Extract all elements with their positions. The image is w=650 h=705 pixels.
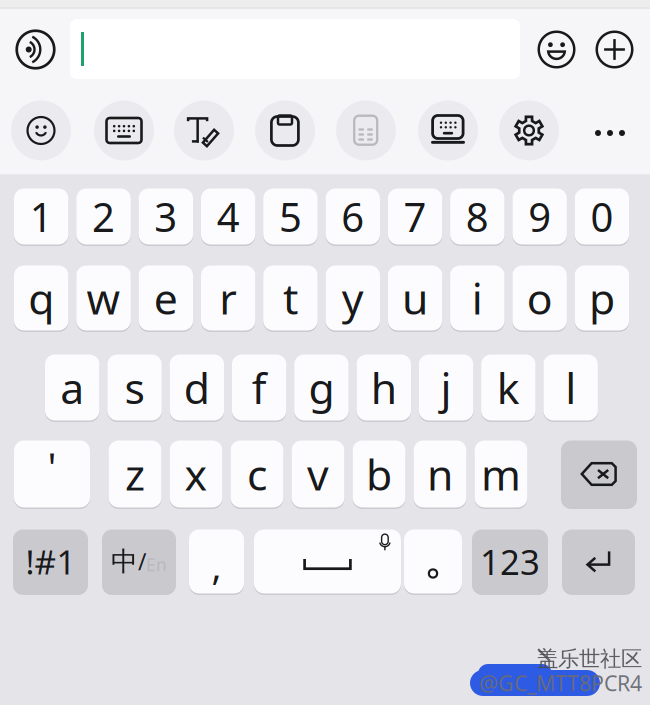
staticText: y [342,270,364,326]
button[interactable]: !#1 [13,528,88,595]
staticText: g [308,359,334,416]
button[interactable]: 3 [139,187,193,246]
button[interactable]: b [352,439,405,509]
button[interactable]: w [76,264,131,332]
button[interactable]: g [294,353,349,422]
button[interactable]: a [45,353,99,422]
button[interactable]: Keyboard settings [499,100,559,160]
button[interactable]: Handwriting [174,100,234,160]
staticText: 3 [154,190,177,243]
button[interactable]: 4 [201,187,255,246]
staticText: e [154,270,178,326]
button[interactable]: Emoji [537,30,575,68]
button[interactable]: Voice message [15,29,55,69]
staticText: l [565,359,576,416]
staticText: 6 [341,190,364,243]
button[interactable]: f [232,353,286,422]
button[interactable]: s [107,353,162,422]
staticText: k [497,359,520,416]
button[interactable]: u [388,264,442,332]
button[interactable]: 5 [263,187,318,246]
button[interactable]: Nine-key keyboard [94,100,154,160]
button[interactable]: Delete [561,439,637,509]
staticText: w [86,270,120,326]
button[interactable]: , [189,528,244,595]
button[interactable]: 123 [472,528,548,595]
button[interactable]: Clipboard [255,100,315,160]
staticText: b [366,446,392,502]
button[interactable]: Full keyboard [418,100,478,160]
staticText: 4 [217,190,240,243]
button[interactable]: q [14,264,68,332]
button[interactable]: Emoticons [11,100,71,160]
button[interactable]: Space [254,528,401,595]
staticText: o [527,270,553,326]
staticText: n [427,446,453,502]
staticText: i [472,270,483,326]
staticText: x [184,446,207,502]
button[interactable]: v [291,439,344,509]
button[interactable]: 2 [76,187,131,246]
staticText: !#1 [25,539,75,584]
button[interactable]: 7 [388,187,442,246]
button[interactable]: ' [14,439,90,509]
staticText: c [247,446,267,502]
staticText: t [283,270,298,326]
staticText: h [371,359,397,416]
staticText: 盖乐世社区 [537,646,642,672]
button[interactable]: Full stop [404,528,462,595]
button[interactable]: k [481,353,536,422]
button[interactable]: m [474,439,527,509]
staticText: v [307,446,329,502]
staticText: En [146,553,167,576]
staticText: 8 [466,190,489,243]
staticText: q [28,270,54,326]
staticText: @GC_MTT8PCR4 [479,669,642,697]
button[interactable]: Switch to English [102,528,176,595]
staticText: 0 [590,190,613,243]
button[interactable]: e [139,264,193,332]
button[interactable]: i [450,264,505,332]
button[interactable]: h [356,353,411,422]
button[interactable]: More actions [595,30,633,68]
staticText: u [402,270,428,326]
button[interactable]: r [201,264,255,332]
staticText: 123 [480,538,540,584]
button[interactable]: 6 [325,187,380,246]
staticText: m [481,446,521,502]
button[interactable]: j [419,353,473,422]
button[interactable]: p [575,264,629,332]
staticText: 7 [403,190,426,243]
button[interactable]: y [325,264,380,332]
staticText: 9 [528,190,551,243]
staticText: j [440,359,451,416]
staticText: 1 [30,190,53,243]
staticText: p [589,270,615,326]
button[interactable]: l [543,353,598,422]
staticText: 中 [111,545,138,578]
button[interactable]: x [169,439,222,509]
staticText: s [124,359,144,416]
button[interactable]: t [263,264,318,332]
button[interactable]: d [170,353,224,422]
staticText: 2 [92,190,115,243]
staticText: ' [47,440,56,493]
button[interactable]: 8 [450,187,505,246]
staticText: z [125,446,145,502]
staticText: d [184,359,210,416]
staticText: , [211,541,221,590]
staticText: / [138,546,146,576]
staticText: 5 [279,190,302,243]
button[interactable]: 1 [14,187,68,246]
staticText: r [219,270,237,326]
button[interactable]: c [230,439,283,509]
button[interactable]: More [580,100,640,160]
button[interactable]: Return [562,528,635,595]
button[interactable]: z [108,439,161,509]
button[interactable]: o [512,264,567,332]
button[interactable]: 0 [575,187,629,246]
button[interactable]: Number pad [336,100,396,160]
staticText: f [252,359,267,416]
button[interactable]: 9 [512,187,567,246]
button[interactable]: n [413,439,466,509]
